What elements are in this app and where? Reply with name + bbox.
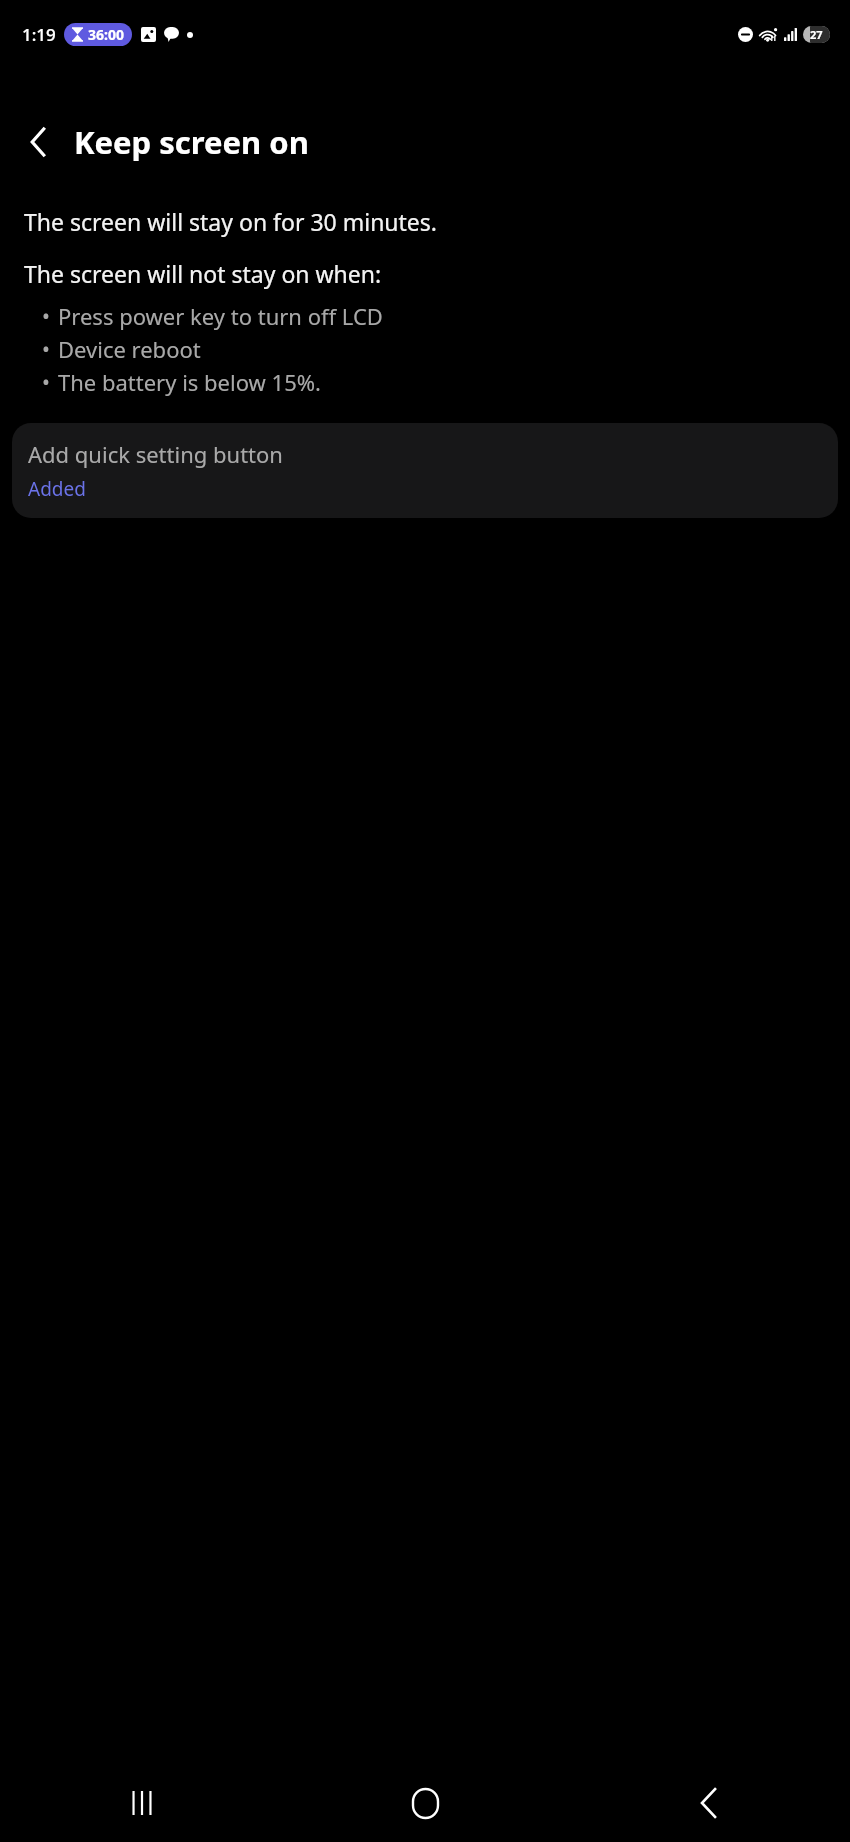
staticText: 27	[810, 27, 823, 42]
staticText: 1:19	[22, 23, 56, 46]
staticText: •	[42, 302, 50, 331]
staticText: Add quick setting button	[28, 439, 283, 469]
staticText: Keep screen on	[74, 121, 309, 163]
staticText: 36:00	[88, 25, 124, 44]
staticText: •	[42, 368, 50, 397]
staticText: The screen will stay on for 30 minutes.	[24, 206, 438, 237]
button[interactable]: Home	[284, 1764, 567, 1842]
staticText: The screen will not stay on when:	[24, 258, 382, 289]
staticText: Device reboot	[58, 334, 201, 364]
staticText: Added	[28, 476, 86, 502]
button[interactable]: Back	[14, 118, 62, 166]
button[interactable]: Recent apps	[0, 1764, 284, 1842]
button[interactable]: Add quick setting button	[12, 423, 838, 518]
staticText: •	[42, 335, 50, 364]
staticText: The battery is below 15%.	[58, 367, 321, 397]
button[interactable]: Back	[567, 1764, 850, 1842]
staticText: Press power key to turn off LCD	[58, 301, 383, 331]
